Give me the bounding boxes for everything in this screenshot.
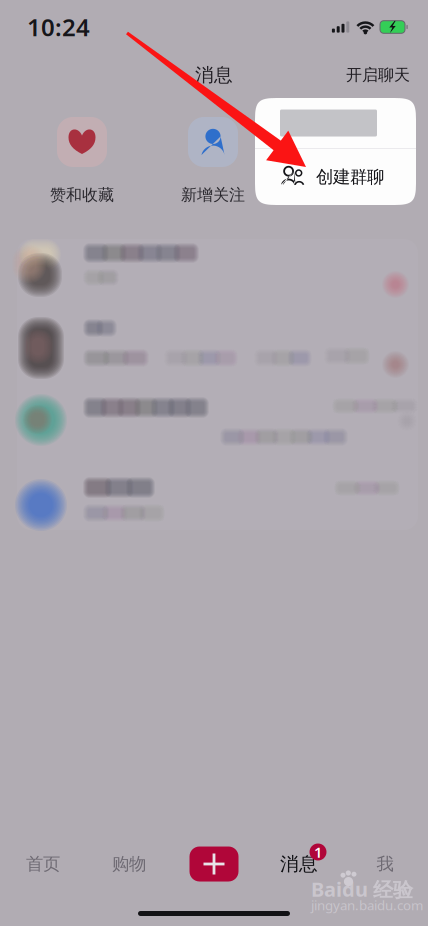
staticText: 消息	[280, 852, 318, 875]
button[interactable]: 开启聊天	[320, 60, 410, 90]
staticText: 10:24	[27, 11, 90, 43]
staticText: 购物	[112, 853, 146, 875]
staticText: 赞和收藏	[50, 185, 114, 205]
button[interactable]: 我	[342, 838, 428, 890]
staticText: 我	[376, 853, 393, 875]
staticText: 新增关注	[181, 185, 245, 205]
button[interactable]: 消息	[256, 838, 342, 890]
staticText: jingyan.baidu.com	[311, 896, 423, 914]
button[interactable]: New post	[172, 838, 256, 890]
staticText: 创建群聊	[316, 166, 384, 188]
button[interactable]: Menu item	[255, 98, 416, 148]
staticText: 首页	[26, 853, 60, 875]
button[interactable]: 赞和收藏	[27, 117, 137, 203]
button[interactable]: 购物	[86, 838, 172, 890]
staticText: Baidu 经验	[311, 876, 413, 902]
staticText: 1	[314, 842, 322, 862]
staticText: 开启聊天	[346, 65, 410, 85]
staticText: 消息	[195, 63, 233, 86]
button[interactable]: 新增关注	[158, 117, 268, 203]
button[interactable]: 首页	[0, 838, 86, 890]
button[interactable]: 创建群聊	[255, 149, 416, 205]
